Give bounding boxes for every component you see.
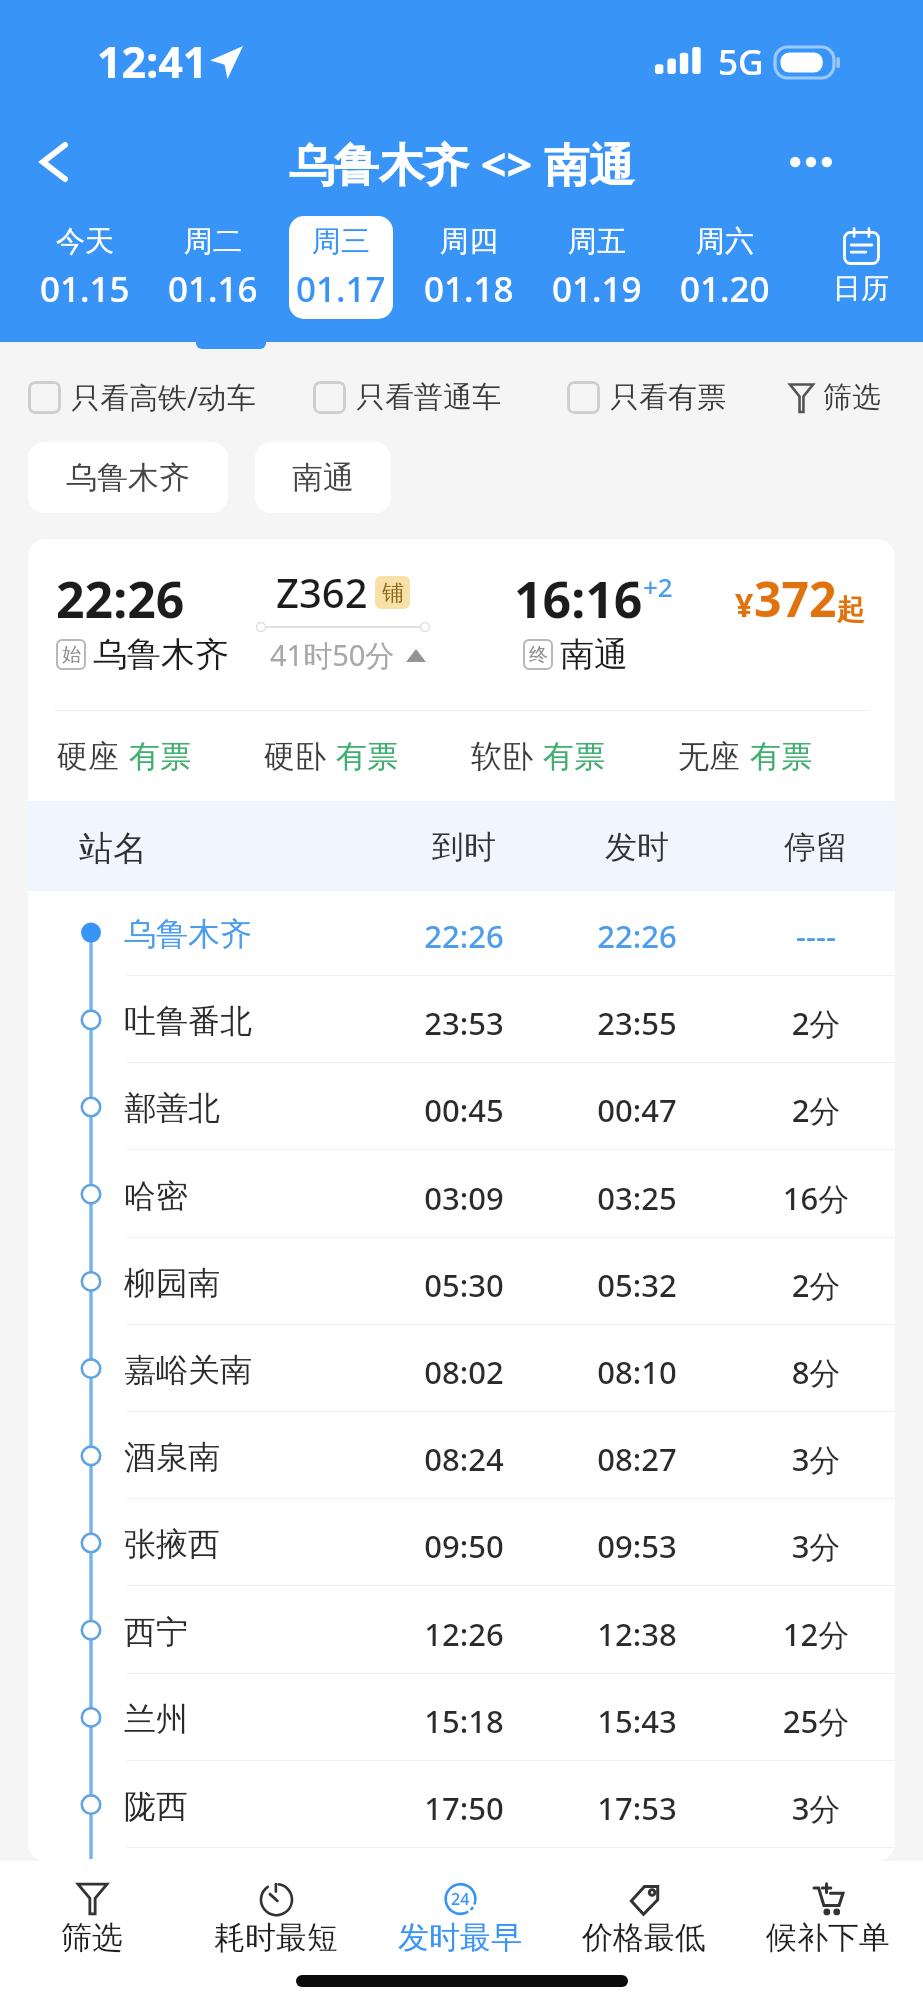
- staticText: 哈密: [124, 1176, 188, 1216]
- button[interactable]: Calendar: [806, 219, 916, 317]
- button[interactable]: 周五: [545, 216, 649, 319]
- staticText: 22:26: [56, 565, 185, 633]
- staticText: 23:55: [577, 1002, 697, 1044]
- staticText: 12:38: [577, 1613, 697, 1655]
- staticText: 08:27: [577, 1438, 697, 1480]
- staticText: 价格最低: [582, 1918, 706, 1957]
- staticText: ----: [756, 915, 876, 957]
- button[interactable]: 筛选: [790, 365, 881, 429]
- staticText: 西宁: [124, 1612, 188, 1652]
- staticText: 周二: [184, 223, 242, 260]
- staticText: 12分: [756, 1613, 876, 1655]
- staticText: 17:50: [404, 1787, 524, 1829]
- button[interactable]: 鄯善北: [28, 1063, 895, 1150]
- button[interactable]: 张掖西: [28, 1499, 895, 1586]
- button[interactable]: 24: [368, 1861, 552, 1973]
- button[interactable]: 只看普通车: [313, 365, 501, 429]
- staticText: 41时50分: [270, 635, 395, 675]
- button[interactable]: 嘉峪关南: [28, 1325, 895, 1412]
- staticText: 软卧: [471, 737, 533, 776]
- staticText: 到时: [404, 827, 524, 867]
- staticText: 2分: [756, 1089, 876, 1131]
- staticText: 00:47: [577, 1089, 697, 1131]
- button[interactable]: 酒泉南: [28, 1412, 895, 1499]
- button[interactable]: 候补下单: [736, 1861, 920, 1973]
- staticText: 16:16: [514, 565, 643, 633]
- button[interactable]: 西宁: [28, 1587, 895, 1674]
- staticText: 柳园南: [124, 1263, 220, 1303]
- staticText: 24: [451, 1888, 470, 1910]
- staticText: 08:02: [404, 1351, 524, 1393]
- staticText: 17:53: [577, 1787, 697, 1829]
- staticText: 停留: [756, 827, 876, 867]
- staticText: 筛选: [823, 379, 881, 416]
- button[interactable]: More options: [779, 130, 843, 194]
- button[interactable]: 筛选: [0, 1861, 184, 1973]
- staticText: 鄯善北: [124, 1088, 220, 1128]
- staticText: 陇西: [124, 1786, 188, 1826]
- staticText: 乌鲁木齐: [124, 914, 252, 954]
- staticText: 12:41: [97, 32, 208, 91]
- staticText: 发时最早: [398, 1918, 522, 1957]
- staticText: 03:25: [577, 1177, 697, 1219]
- staticText: 乌鲁木齐: [93, 633, 229, 676]
- button[interactable]: 周三: [289, 216, 393, 319]
- staticText: 15:18: [404, 1700, 524, 1742]
- staticText: 吐鲁番北: [124, 1001, 252, 1041]
- staticText: 周四: [440, 223, 498, 260]
- staticText: 乌鲁木齐: [66, 458, 190, 497]
- staticText: 周三: [312, 223, 370, 260]
- staticText: 16分: [756, 1177, 876, 1219]
- staticText: 终: [529, 643, 548, 667]
- button[interactable]: 陇西: [28, 1761, 895, 1848]
- button[interactable]: 哈密: [28, 1151, 895, 1238]
- button[interactable]: 南通: [255, 442, 391, 513]
- staticText: +2: [643, 569, 673, 604]
- staticText: 23:53: [404, 1002, 524, 1044]
- staticText: 筛选: [61, 1918, 123, 1957]
- button[interactable]: 乌鲁木齐: [28, 442, 228, 513]
- staticText: 周五: [568, 223, 626, 260]
- button[interactable]: 周六: [673, 216, 777, 319]
- button[interactable]: 乌鲁木齐: [28, 889, 895, 976]
- staticText: 南通: [560, 633, 628, 676]
- staticText: 耗时最短: [214, 1918, 338, 1957]
- staticText: 发时: [577, 827, 697, 867]
- staticText: 只看有票: [610, 379, 726, 416]
- staticText: 站名: [79, 827, 147, 870]
- button[interactable]: 兰州: [28, 1674, 895, 1761]
- button[interactable]: 只看高铁/动车: [28, 365, 256, 429]
- staticText: 08:10: [577, 1351, 697, 1393]
- staticText: 日历: [833, 271, 889, 306]
- staticText: 起: [837, 592, 865, 627]
- button[interactable]: 周四: [417, 216, 521, 319]
- button[interactable]: 价格最低: [552, 1861, 736, 1973]
- staticText: 3分: [756, 1438, 876, 1480]
- staticText: 无座: [678, 737, 740, 776]
- staticText: 372: [754, 566, 837, 631]
- staticText: 只看普通车: [356, 379, 501, 416]
- staticText: 始: [62, 643, 81, 667]
- staticText: 嘉峪关南: [124, 1350, 252, 1390]
- button[interactable]: 耗时最短: [184, 1861, 368, 1973]
- staticText: 周六: [696, 223, 754, 260]
- staticText: ¥: [735, 583, 754, 627]
- staticText: 铺: [382, 579, 404, 607]
- button[interactable]: 柳园南: [28, 1238, 895, 1325]
- staticText: 今天: [56, 223, 114, 260]
- button[interactable]: Back: [22, 130, 86, 194]
- button[interactable]: 吐鲁番北: [28, 976, 895, 1063]
- button[interactable]: 周二: [161, 216, 265, 319]
- staticText: 01.20: [680, 265, 770, 313]
- button[interactable]: 只看有票: [567, 365, 726, 429]
- staticText: 01.16: [168, 265, 258, 313]
- staticText: 15:43: [577, 1700, 697, 1742]
- staticText: 5G: [718, 38, 764, 86]
- staticText: 硬座: [57, 737, 119, 776]
- staticText: 8分: [756, 1351, 876, 1393]
- staticText: 有票: [750, 737, 812, 776]
- button[interactable]: 今天: [33, 216, 137, 319]
- staticText: 有票: [543, 737, 605, 776]
- staticText: 08:24: [404, 1438, 524, 1480]
- staticText: 03:09: [404, 1177, 524, 1219]
